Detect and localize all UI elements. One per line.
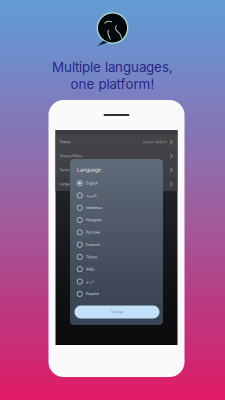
staticText: Privacy Policy [59, 154, 82, 158]
staticText: Language [77, 166, 101, 173]
button[interactable]: Português [77, 214, 163, 226]
staticText: Language [59, 182, 75, 186]
button[interactable]: Español [77, 288, 163, 300]
staticText: Русский [86, 230, 100, 234]
staticText: Español [86, 292, 99, 296]
button[interactable]: Theme [55, 135, 177, 149]
button[interactable]: English [77, 177, 163, 189]
staticText: العربية [86, 193, 96, 197]
staticText: Indonesia [86, 206, 102, 210]
button[interactable]: Türkçe [77, 251, 163, 263]
staticText: اردو [86, 279, 93, 283]
staticText: English [86, 181, 98, 185]
button[interactable]: Terms of Use [55, 163, 177, 177]
staticText: Deutsch [86, 243, 100, 247]
button[interactable]: Indonesia [77, 202, 163, 214]
button[interactable]: Language [55, 177, 177, 191]
staticText: Terms of Use [59, 168, 81, 172]
staticText: Cancel [111, 310, 123, 314]
staticText: Multiple languages, [52, 59, 173, 75]
button[interactable]: 中国人 [77, 263, 163, 275]
staticText: System default [142, 140, 166, 144]
button[interactable]: Deutsch [77, 238, 163, 251]
button[interactable]: Русский [77, 226, 163, 238]
button[interactable]: Cancel [74, 305, 159, 318]
button[interactable]: Privacy Policy [55, 149, 177, 163]
staticText: Türkçe [86, 255, 97, 259]
button[interactable]: اردو [77, 275, 163, 288]
staticText: Português [86, 218, 102, 222]
button[interactable]: العربية [77, 189, 163, 202]
staticText: one platform! [70, 76, 154, 92]
staticText: 中国人 [86, 267, 95, 271]
staticText: Theme [59, 140, 70, 144]
